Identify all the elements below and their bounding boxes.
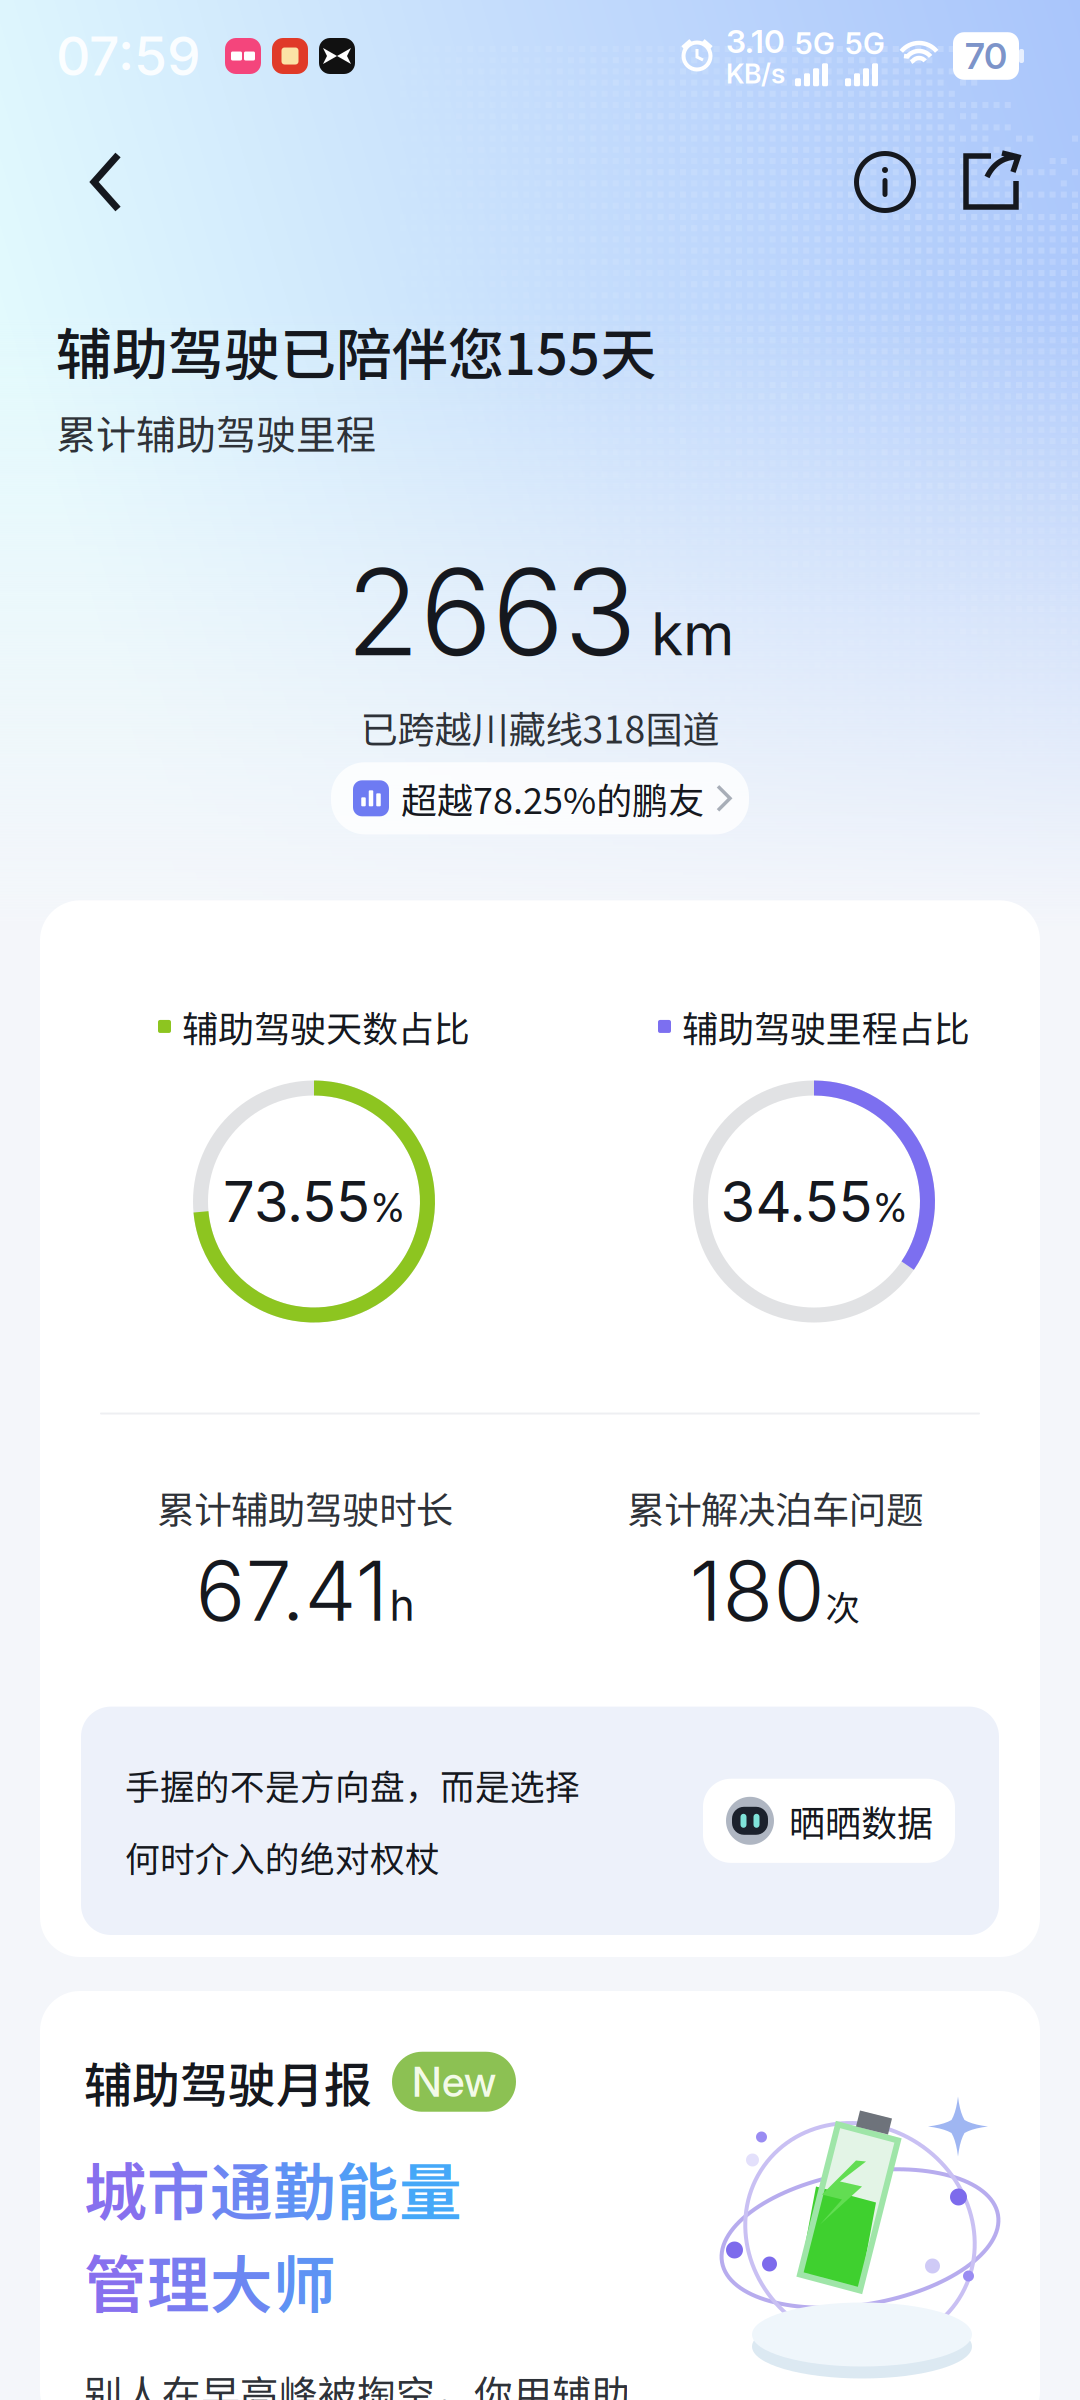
- staticText: 城: [84, 2142, 147, 2233]
- button[interactable]: Share: [944, 137, 1026, 227]
- staticText: 量: [399, 2142, 462, 2233]
- staticText: 累计解决泊车问题: [627, 1480, 923, 1535]
- staticText: 能: [336, 2142, 399, 2233]
- button[interactable]: 超越78.25%的鹏友: [331, 762, 749, 834]
- staticText: 73.55: [223, 1168, 370, 1235]
- staticText: 67.41: [195, 1541, 388, 1641]
- staticText: 管: [84, 2235, 147, 2326]
- staticText: 累计辅助驾驶里程: [56, 403, 376, 461]
- staticText: 5G: [845, 26, 885, 61]
- staticText: 3.10: [726, 22, 785, 61]
- staticText: 别人在早高峰被掏空，你用辅助: [84, 2364, 630, 2400]
- staticText: 晒晒数据: [789, 1795, 933, 1847]
- staticText: 2663: [346, 539, 637, 684]
- staticText: 何时介入的绝对权杖: [125, 1832, 440, 1882]
- staticText: 次: [825, 1580, 860, 1631]
- staticText: %: [873, 1184, 907, 1231]
- staticText: 累计辅助驾驶时长: [157, 1480, 453, 1535]
- staticText: 师: [273, 2235, 336, 2326]
- staticText: %: [371, 1184, 405, 1231]
- staticText: 已跨越川藏线318国道: [360, 700, 719, 754]
- staticText: 34.55: [720, 1168, 872, 1235]
- staticText: 5G: [795, 26, 835, 61]
- staticText: 辅助驾驶天数占比: [182, 1000, 470, 1052]
- staticText: 辅助驾驶月报: [84, 2047, 372, 2116]
- staticText: 手握的不是方向盘，而是选择: [125, 1760, 580, 1810]
- staticText: h: [389, 1579, 414, 1631]
- staticText: 07:59: [56, 24, 201, 88]
- staticText: km: [651, 598, 734, 669]
- button[interactable]: Back: [54, 135, 144, 229]
- staticText: 勤: [273, 2142, 336, 2233]
- staticText: 180: [689, 1541, 824, 1641]
- staticText: 理: [147, 2235, 210, 2326]
- staticText: 超越78.25%的鹏友: [401, 772, 704, 824]
- staticText: New: [412, 2057, 496, 2107]
- staticText: KB/s: [726, 58, 785, 90]
- staticText: 通: [210, 2142, 273, 2233]
- staticText: 市: [147, 2142, 210, 2233]
- staticText: 大: [210, 2235, 273, 2326]
- staticText: 70: [965, 34, 1007, 78]
- button[interactable]: Info: [838, 137, 944, 227]
- staticText: 辅助驾驶已陪伴您155天: [56, 310, 656, 391]
- staticText: 辅助驾驶里程占比: [682, 1000, 970, 1052]
- button[interactable]: 晒晒数据: [703, 1779, 955, 1863]
